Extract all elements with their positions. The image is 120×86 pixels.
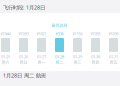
staticText: ¥1035 [108, 31, 118, 36]
staticText: 最优选择 [51, 23, 67, 28]
staticText: 01-30 [91, 54, 100, 59]
staticText: ¥1039 [18, 31, 28, 36]
staticText: 01-27 [37, 54, 46, 59]
staticText: 01-29 [73, 54, 82, 59]
staticText: 周日 [19, 60, 27, 65]
staticText: 01-26 [19, 54, 28, 59]
staticText: 周一 [37, 60, 45, 65]
staticText: 1月28日 周二 航班 [3, 72, 46, 79]
staticText: ¥1055 [90, 31, 100, 36]
staticText: 周四 [91, 60, 99, 65]
staticText: 周三 [73, 60, 81, 65]
staticText: 周五 [109, 60, 117, 65]
staticText: ¥1044 [0, 31, 10, 36]
staticText: ¥1156 [72, 31, 82, 36]
staticText: ¥1021 [36, 31, 46, 36]
staticText: 01-31 [109, 54, 118, 59]
staticText: 周二 [55, 60, 63, 65]
staticText: 01-25 [1, 54, 10, 59]
staticText: 01-28 [55, 54, 64, 59]
staticText: ¥336 [55, 31, 63, 36]
staticText: 周六 [1, 60, 9, 65]
staticText: 飞行时段: 1月28日 [3, 4, 45, 11]
